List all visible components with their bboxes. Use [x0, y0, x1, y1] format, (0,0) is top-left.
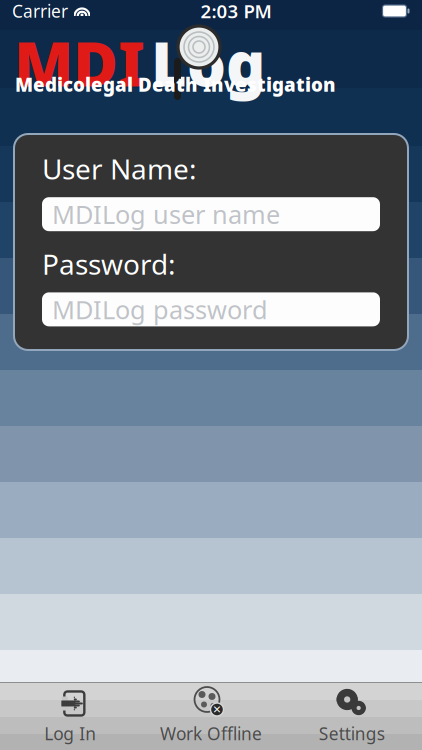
staticText: MDI	[14, 22, 145, 103]
staticText: 2:03 PM	[200, 0, 271, 23]
staticText: Medicolegal Death Investigation	[15, 72, 336, 97]
staticText: Settings	[319, 722, 385, 745]
staticText: Password:	[42, 245, 176, 282]
staticText: MDILog user name	[52, 197, 280, 231]
staticText: ✕	[212, 703, 221, 715]
button[interactable]: Log In	[0, 683, 141, 750]
staticText: User Name:	[42, 150, 197, 187]
button[interactable]: MDILog user name	[42, 197, 380, 231]
staticText: Log In	[44, 722, 96, 745]
staticText: Carrier	[12, 0, 68, 22]
staticText: Work Offline	[160, 722, 262, 745]
staticText: MDILog password	[52, 292, 268, 326]
button[interactable]: MDILog password	[42, 292, 380, 326]
button[interactable]: Settings	[281, 683, 422, 750]
button[interactable]: ✕	[141, 683, 281, 750]
staticText: Log	[151, 22, 265, 103]
